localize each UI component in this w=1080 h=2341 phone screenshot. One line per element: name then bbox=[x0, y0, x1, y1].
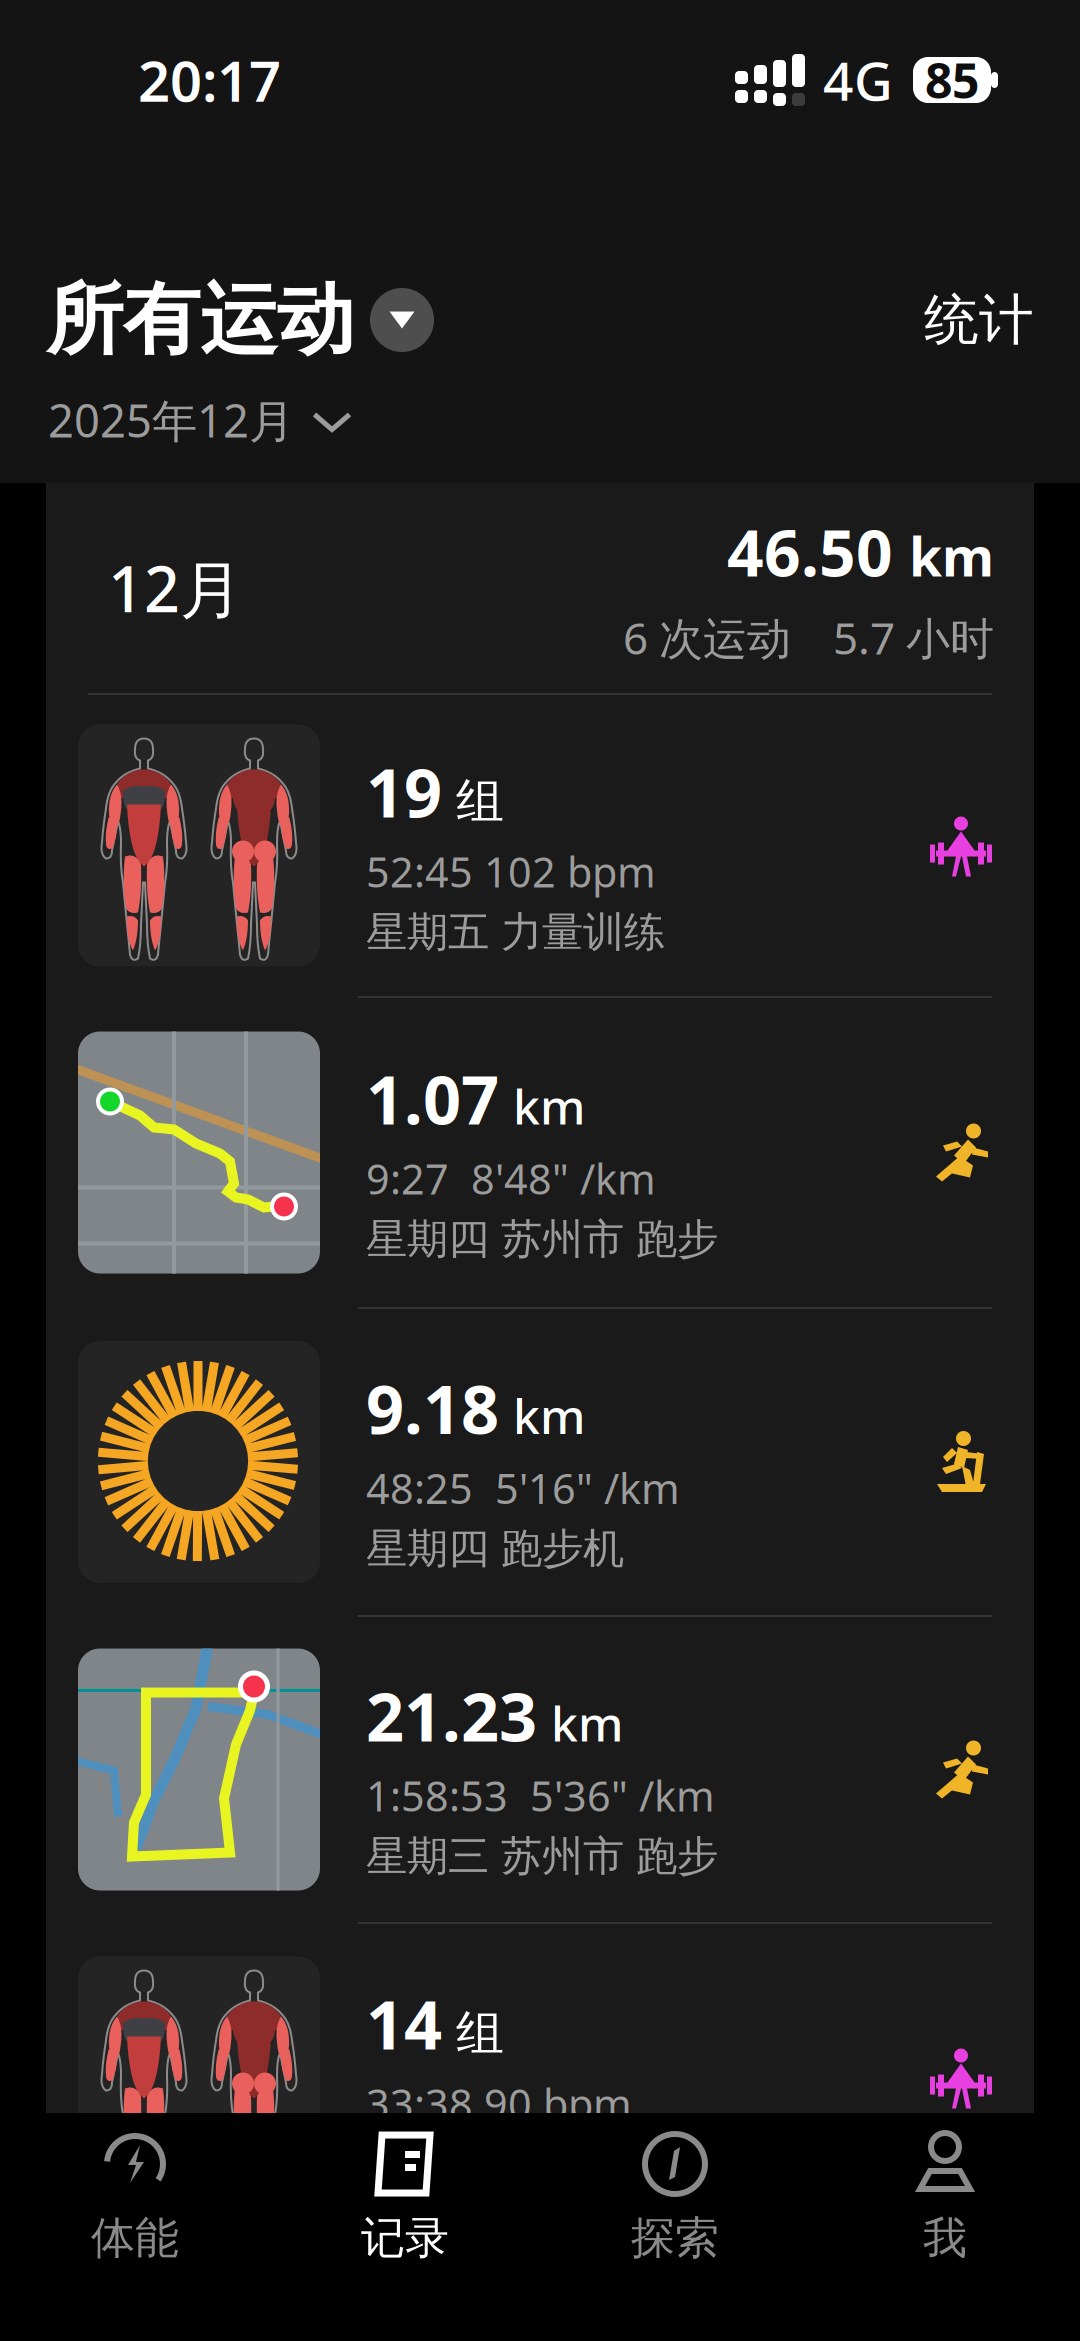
button[interactable]: 1.07 bbox=[46, 998, 1034, 1307]
staticText: 1:58:53 5'36" /km bbox=[366, 1768, 715, 1823]
staticText: 12月 bbox=[108, 546, 243, 630]
staticText: 52:45 102 bpm bbox=[366, 844, 656, 899]
staticText: 组 bbox=[456, 772, 504, 831]
button[interactable]: 19 bbox=[46, 695, 1034, 996]
staticText: 48:25 5'16" /km bbox=[366, 1460, 680, 1515]
button[interactable]: 探索 bbox=[540, 2131, 810, 2265]
button[interactable]: 9.18 bbox=[46, 1309, 1034, 1615]
button[interactable]: 21.23 bbox=[46, 1617, 1034, 1922]
staticText: km bbox=[513, 1074, 585, 1138]
button[interactable]: 我 bbox=[810, 2131, 1080, 2265]
staticText: 21.23 bbox=[366, 1671, 537, 1760]
staticText: 20:17 bbox=[138, 43, 281, 117]
staticText: km bbox=[909, 520, 994, 591]
staticText: 星期五 力量训练 bbox=[366, 907, 665, 958]
button[interactable]: 14 bbox=[46, 1924, 1034, 2231]
staticText: 记录 bbox=[361, 2211, 449, 2265]
staticText: 14 bbox=[366, 1979, 442, 2068]
staticText: 统计 bbox=[924, 286, 1034, 353]
button[interactable]: 所有运动 bbox=[46, 286, 434, 354]
staticText: 我 bbox=[923, 2211, 967, 2265]
staticText: 6 次运动 bbox=[623, 608, 791, 667]
staticText: 9:27 8'48" /km bbox=[366, 1151, 656, 1206]
staticText: 探索 bbox=[631, 2211, 719, 2265]
staticText: 2025年12月 bbox=[48, 390, 294, 450]
staticText: 所有运动 bbox=[46, 272, 354, 367]
staticText: km bbox=[551, 1691, 623, 1755]
staticText: 星期五 力量训练 bbox=[366, 2139, 665, 2190]
staticText: 5.7 小时 bbox=[833, 608, 994, 667]
staticText: 19 bbox=[366, 747, 442, 836]
staticText: 85 bbox=[925, 48, 979, 112]
staticText: 4G bbox=[823, 45, 893, 115]
staticText: 星期四 跑步机 bbox=[366, 1523, 624, 1574]
staticText: 1.07 bbox=[366, 1054, 499, 1143]
staticText: 33:38 90 bpm bbox=[366, 2076, 632, 2131]
button[interactable]: 体能 bbox=[0, 2131, 270, 2265]
staticText: 星期四 苏州市 跑步 bbox=[366, 1214, 718, 1265]
staticText: 9.18 bbox=[366, 1364, 499, 1452]
staticText: km bbox=[513, 1383, 585, 1447]
staticText: 体能 bbox=[91, 2211, 179, 2265]
staticText: 46.50 bbox=[727, 509, 893, 594]
button[interactable]: 2025年12月 bbox=[0, 392, 352, 448]
button[interactable]: 记录 bbox=[270, 2131, 540, 2265]
staticText: 星期三 苏州市 跑步 bbox=[366, 1831, 718, 1882]
staticText: 组 bbox=[456, 2004, 504, 2063]
button[interactable]: 统计 bbox=[924, 286, 1036, 354]
